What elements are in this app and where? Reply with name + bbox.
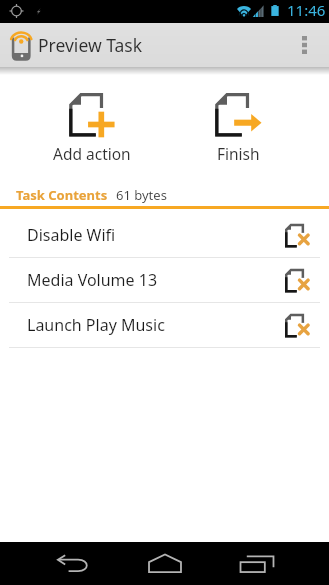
- staticText: Disable Wifi: [27, 224, 116, 246]
- staticText: Add action: [53, 143, 131, 164]
- button[interactable]: Add action: [19, 93, 165, 164]
- staticText: 61 bytes: [116, 186, 167, 204]
- button[interactable]: Delete Media Volume 13: [284, 258, 328, 302]
- button[interactable]: Delete Launch Play Music: [284, 303, 328, 347]
- button[interactable]: Launch Play Music: [0, 303, 329, 347]
- button[interactable]: Finish: [165, 93, 311, 164]
- button[interactable]: Recents: [211, 542, 303, 585]
- staticText: Task Contents: [16, 186, 108, 204]
- button[interactable]: Media Volume 13: [0, 258, 329, 302]
- button[interactable]: Disable Wifi: [0, 213, 329, 257]
- staticText: 11:46: [287, 0, 326, 20]
- button[interactable]: Home: [119, 542, 211, 585]
- staticText: Finish: [217, 143, 260, 164]
- button[interactable]: Delete Disable Wifi: [284, 213, 328, 257]
- staticText: Media Volume 13: [27, 269, 158, 291]
- staticText: Preview Task: [38, 33, 143, 57]
- button[interactable]: More options: [288, 23, 320, 67]
- button[interactable]: Back: [27, 542, 119, 585]
- staticText: Launch Play Music: [27, 314, 165, 336]
